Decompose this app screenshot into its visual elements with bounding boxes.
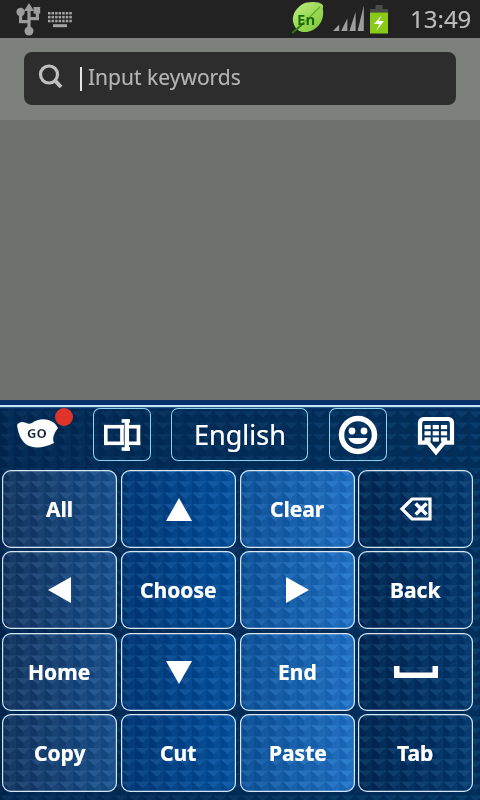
button[interactable] [2,551,117,629]
staticText: Input keywords [88,63,241,92]
button[interactable]: Back [358,551,473,629]
staticText: GO [27,424,47,442]
button[interactable]: Paste [240,714,355,792]
button[interactable] [240,551,355,629]
button[interactable]: End [240,633,355,711]
staticText: End [278,658,317,687]
button[interactable]: English [171,408,308,461]
button[interactable]: Clear [240,470,355,548]
staticText: Choose [140,576,217,605]
button[interactable]: Hide keyboard [398,408,474,461]
button[interactable]: Cut [121,714,236,792]
staticText: Clear [270,495,325,524]
button[interactable] [121,470,236,548]
button[interactable] [358,470,473,548]
button[interactable]: Home [2,633,117,711]
button[interactable] [121,633,236,711]
staticText: En [297,9,316,29]
button[interactable]: GO Keyboard menu [6,404,82,460]
button[interactable]: Emoji [329,408,387,461]
staticText: Home [28,658,91,687]
staticText: 13:49 [410,2,472,35]
button[interactable]: Copy [2,714,117,792]
staticText: All [46,495,74,524]
staticText: Copy [34,739,86,768]
button[interactable]: Input method [93,408,151,461]
staticText: Back [390,576,441,605]
button[interactable]: Tab [358,714,473,792]
staticText: Paste [269,739,327,768]
button[interactable]: Choose [121,551,236,629]
button[interactable]: Input keywords [24,52,456,105]
button[interactable] [358,633,473,711]
staticText: English [194,416,286,453]
staticText: Cut [160,739,197,768]
staticText: Tab [397,739,434,768]
button[interactable]: All [2,470,117,548]
